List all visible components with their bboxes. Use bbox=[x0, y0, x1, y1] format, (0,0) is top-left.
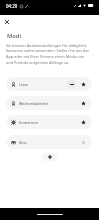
button[interactable]: Kino bbox=[6, 135, 92, 149]
button[interactable]: Favorite bbox=[79, 118, 88, 127]
button[interactable]: Add mode bbox=[42, 153, 57, 161]
button[interactable]: Favorite bbox=[79, 99, 88, 108]
staticText: Modi bbox=[7, 32, 22, 40]
button[interactable]: Immersion bbox=[6, 115, 92, 129]
button[interactable]: Wochenkalender bbox=[6, 96, 92, 110]
button[interactable]: Favorite bbox=[79, 138, 88, 147]
staticText: Leise bbox=[19, 82, 28, 87]
staticText: Immersion bbox=[19, 120, 38, 125]
button[interactable]: More options bbox=[67, 80, 76, 89]
button[interactable]: Close bbox=[1, 16, 13, 28]
staticText: 04:29 bbox=[6, 3, 18, 9]
staticText: Kino bbox=[19, 140, 27, 145]
button[interactable]: Favorite bbox=[79, 80, 88, 89]
staticText: Wochenkalender bbox=[19, 101, 49, 106]
staticText: Sie können Audioeinstellungen für alltäg… bbox=[6, 43, 91, 66]
button[interactable]: Leise bbox=[6, 77, 92, 91]
